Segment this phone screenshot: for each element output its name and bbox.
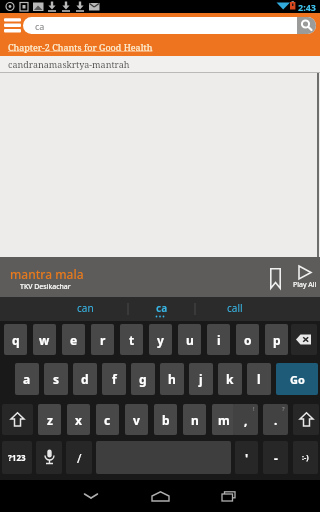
button[interactable] [291,324,317,355]
button[interactable]: v [125,404,148,435]
button[interactable] [144,484,176,508]
button[interactable]: g [131,363,155,395]
staticText: 2:43 [298,1,316,13]
button[interactable]: , [233,404,258,435]
staticText: c [104,412,111,428]
button[interactable]: can [48,297,123,319]
button[interactable]: ca [128,297,195,319]
button[interactable]: ' [235,441,258,474]
staticText: ca [35,20,45,32]
staticText: g [139,371,147,387]
staticText: Chapter-2 Chants for Good Health [8,41,153,53]
staticText: r [100,332,106,348]
button[interactable] [297,17,316,34]
button[interactable]: t [120,324,143,355]
button[interactable]: p [265,324,288,355]
staticText: o [244,332,252,348]
button[interactable]: d [73,363,97,395]
staticText: p [273,332,281,348]
staticText: m [218,412,230,428]
button[interactable]: o [236,324,259,355]
button[interactable]: . [263,404,288,435]
staticText: x [75,412,82,428]
button[interactable]: - [263,441,288,474]
button[interactable]: Chapter-2 Chants for Good Health [0,38,320,56]
staticText: z [47,412,53,428]
staticText: j [199,371,203,387]
staticText: k [226,371,234,387]
staticText: y [157,332,164,348]
button[interactable] [212,484,244,508]
staticText: f [112,371,117,387]
button[interactable]: b [154,404,177,435]
button[interactable]: s [44,363,68,395]
staticText: candranamaskrtya-mantrah [8,58,130,70]
button[interactable]: n [183,404,206,435]
staticText: call [227,301,243,315]
button[interactable]: ?123 [2,441,32,474]
button[interactable]: h [160,363,184,395]
button[interactable]: c [96,404,119,435]
button[interactable] [2,404,33,435]
staticText: a [23,371,31,387]
staticText: TKV Desikachar [20,282,71,292]
staticText: q [12,332,20,348]
staticText: ' [245,450,249,466]
staticText: ca [156,301,168,315]
staticText: ! [253,405,255,413]
button[interactable] [293,404,319,435]
button[interactable]: call [195,297,274,319]
button[interactable] [36,441,62,474]
button[interactable]: ca [23,17,316,34]
staticText: can [77,301,94,315]
button[interactable]: z [38,404,61,435]
staticText: Go [290,372,305,387]
staticText: , [244,412,248,428]
button[interactable]: Go [276,363,318,395]
staticText: n [191,412,199,428]
staticText: ? [282,405,285,413]
button[interactable]: x [67,404,90,435]
staticText: u [186,332,194,348]
button[interactable] [268,266,282,290]
staticText: . [274,412,278,428]
staticText: b [162,412,170,428]
staticText: - [274,450,278,466]
button[interactable]: y [149,324,172,355]
button[interactable]: Play All [293,265,317,290]
button[interactable]: / [66,441,92,474]
button[interactable]: :-) [293,441,318,474]
staticText: / [77,450,82,466]
staticText: e [70,332,78,348]
staticText: Play All [293,280,317,290]
button[interactable]: e [62,324,85,355]
button[interactable]: a [15,363,39,395]
staticText: l [257,371,261,387]
button[interactable]: w [33,324,56,355]
button[interactable]: j [189,363,213,395]
button[interactable]: i [207,324,230,355]
staticText: :-) [302,453,309,463]
button[interactable]: f [102,363,126,395]
button[interactable] [3,16,22,36]
button[interactable]: q [4,324,27,355]
button[interactable] [75,484,107,508]
staticText: d [81,371,89,387]
button[interactable]: k [218,363,242,395]
staticText: ?123 [8,452,26,463]
button[interactable]: r [91,324,114,355]
button[interactable]: u [178,324,201,355]
staticText: t [129,332,135,348]
button[interactable]: candranamaskrtya-mantrah [0,56,320,73]
staticText: mantra mala [10,266,84,282]
staticText: s [53,371,60,387]
staticText: h [168,371,176,387]
staticText: v [133,412,140,428]
staticText: i [217,332,221,348]
staticText: w [39,332,50,348]
button[interactable]: l [247,363,271,395]
button[interactable]: m [212,404,235,435]
